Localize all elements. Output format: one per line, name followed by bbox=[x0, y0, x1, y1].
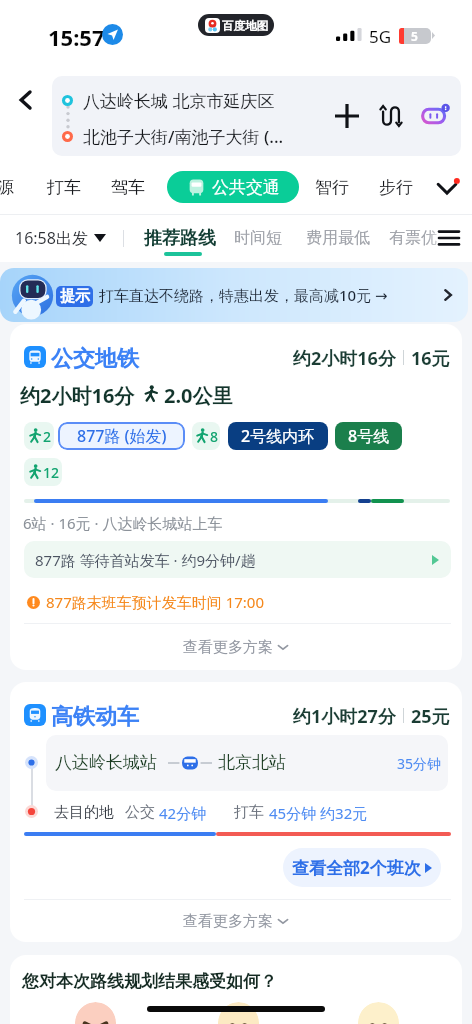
staticText: 公共交通 bbox=[212, 177, 280, 198]
staticText: 25元 bbox=[411, 704, 450, 726]
staticText: 877路末班车预计发车时间 17:00 bbox=[46, 592, 264, 612]
button[interactable]: Good bbox=[358, 1002, 399, 1024]
button[interactable]: 提示 bbox=[0, 268, 468, 322]
staticText: 八达岭长城 北京市延庆区 bbox=[83, 89, 275, 112]
staticText: 42分钟 bbox=[159, 803, 207, 823]
button[interactable]: 时间短 bbox=[234, 228, 282, 248]
staticText: 去目的地 bbox=[54, 803, 114, 822]
staticText: 35分钟 bbox=[397, 754, 442, 773]
button[interactable]: Swap origin and destination bbox=[369, 94, 413, 138]
button[interactable]: 高铁动车 bbox=[10, 682, 462, 942]
button[interactable]: Okay bbox=[218, 1002, 259, 1024]
staticText: 查看更多方案 bbox=[183, 912, 273, 931]
staticText: 约1小时27分 bbox=[293, 704, 396, 726]
button[interactable]: 公共交通 bbox=[167, 171, 299, 203]
staticText: 查看全部2个班次 bbox=[292, 856, 421, 879]
staticText: 公交 bbox=[125, 803, 155, 822]
button[interactable]: 公交地铁 bbox=[10, 324, 462, 670]
button[interactable]: 查看全部2个班次 bbox=[283, 848, 441, 887]
staticText: 12 bbox=[43, 463, 60, 482]
staticText: 公交地铁 bbox=[51, 345, 139, 373]
staticText: 提示 bbox=[60, 287, 90, 306]
staticText: 北京北站 bbox=[218, 752, 286, 773]
staticText: 北池子大街/南池子大街 (... bbox=[83, 125, 284, 148]
staticText: 2 bbox=[43, 427, 52, 446]
staticText: 推荐路线 bbox=[144, 227, 216, 250]
button[interactable]: Filter options bbox=[434, 223, 464, 253]
staticText: 八达岭长城站 bbox=[55, 752, 157, 773]
button[interactable]: 877路 等待首站发车 · 约9分钟/趟 bbox=[35, 541, 439, 578]
staticText: 2号线内环 bbox=[241, 425, 315, 447]
staticText: 45分钟 约32元 bbox=[269, 803, 368, 823]
staticText: 16元 bbox=[411, 346, 450, 368]
staticText: 877路 等待首站发车 · 约9分钟/趟 bbox=[35, 550, 256, 570]
button[interactable]: 查看更多方案 bbox=[10, 624, 462, 670]
button[interactable]: 八达岭长城 北京市延庆区 bbox=[62, 86, 275, 114]
staticText: 高铁动车 bbox=[51, 703, 139, 731]
staticText: 查看更多方案 bbox=[183, 638, 273, 657]
button[interactable]: 智行 bbox=[315, 177, 349, 198]
button[interactable]: 源 bbox=[0, 177, 14, 198]
staticText: 5G bbox=[369, 25, 392, 48]
button[interactable]: 步行 bbox=[379, 177, 413, 198]
staticText: 5 bbox=[411, 28, 418, 44]
staticText: 百度地图 bbox=[222, 19, 268, 33]
staticText: 8号线 bbox=[348, 425, 390, 447]
button[interactable]: 打车 bbox=[47, 177, 81, 198]
staticText: 2.0公里 bbox=[164, 382, 233, 406]
staticText: 打车直达不绕路，特惠出发，最高减10元 → bbox=[99, 285, 388, 305]
button[interactable]: 查看更多方案 bbox=[10, 900, 462, 942]
button[interactable]: 16:58出发 bbox=[15, 227, 106, 249]
button[interactable]: More travel modes bbox=[430, 170, 464, 204]
staticText: 您对本次路线规划结果感受如何？ bbox=[22, 971, 277, 992]
button[interactable]: 费用最低 bbox=[306, 228, 370, 248]
staticText: 6站 · 16元 · 八达岭长城站上车 bbox=[23, 513, 223, 533]
button[interactable]: 推荐路线 bbox=[144, 227, 216, 250]
button[interactable]: 北池子大街/南池子大街 (... bbox=[62, 122, 284, 150]
staticText: 15:57 bbox=[48, 22, 105, 52]
button[interactable]: Add waypoint bbox=[325, 94, 369, 138]
button[interactable]: AI assistant bbox=[413, 94, 457, 138]
button[interactable]: 有票优 bbox=[389, 228, 437, 248]
staticText: 877路 (始发) bbox=[77, 425, 167, 447]
button[interactable]: Back bbox=[8, 82, 44, 118]
staticText: 打车 bbox=[234, 803, 264, 822]
staticText: 约2小时16分 bbox=[20, 382, 135, 406]
staticText: 约2小时16分 bbox=[293, 346, 396, 368]
button[interactable]: Bad bbox=[75, 1002, 116, 1024]
staticText: 16:58出发 bbox=[15, 227, 88, 249]
button[interactable]: 驾车 bbox=[111, 177, 145, 198]
staticText: 8 bbox=[210, 427, 219, 446]
